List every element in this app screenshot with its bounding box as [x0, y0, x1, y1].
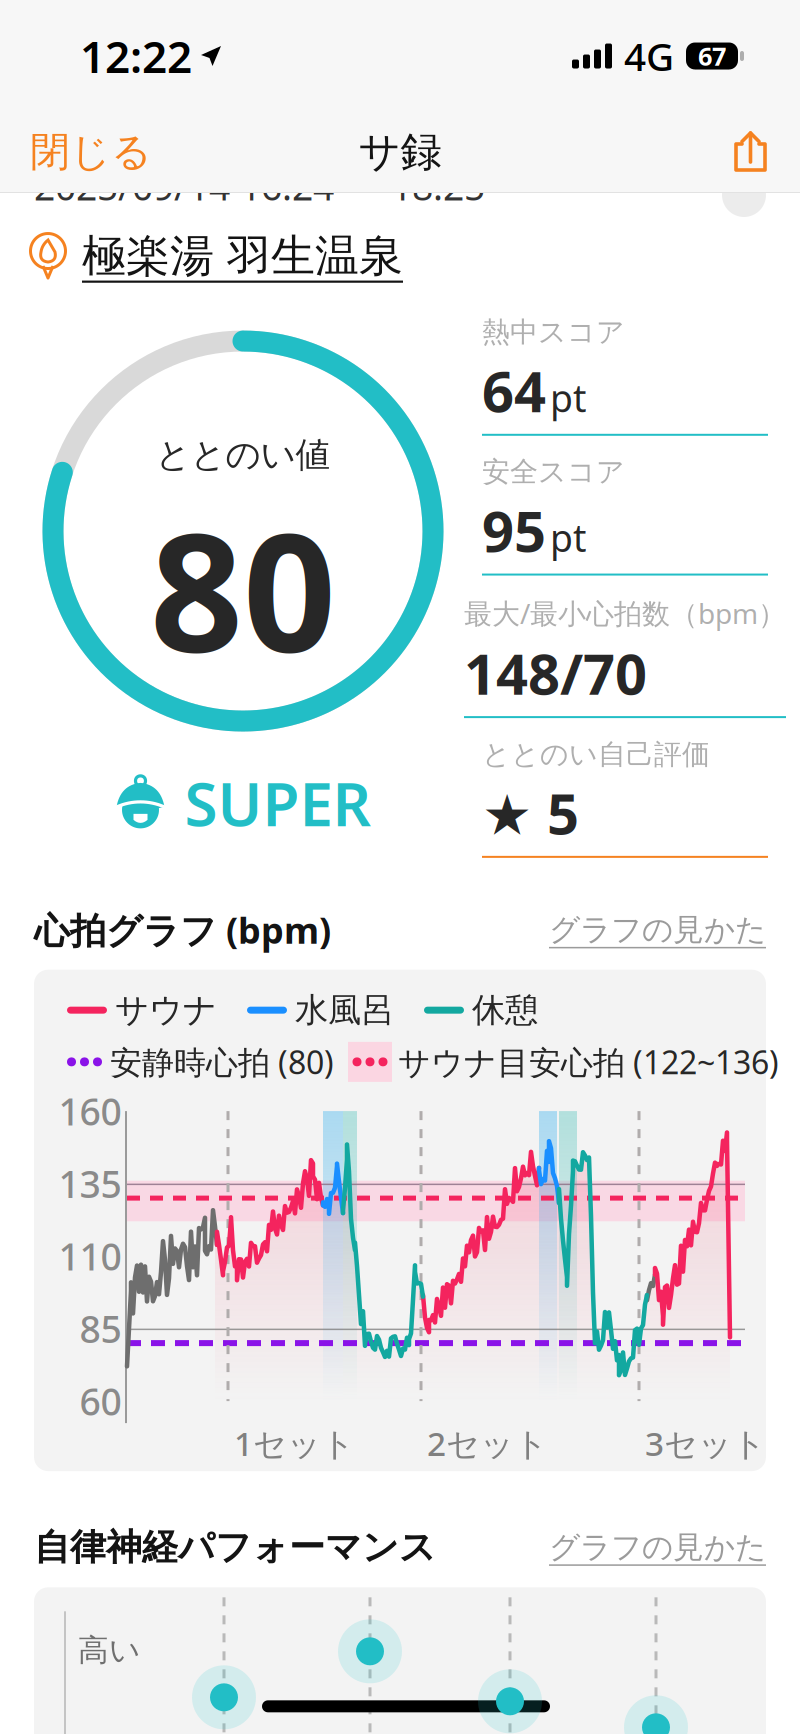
staticText: 閉じる — [30, 127, 152, 176]
staticText: 148/70 — [464, 636, 647, 710]
staticText: 60 — [79, 1376, 121, 1426]
staticText: ととのい値 — [155, 434, 330, 476]
staticText: 安静時心拍 (80) — [110, 1041, 334, 1083]
staticText: SUPER — [184, 763, 371, 843]
staticText: 135 — [58, 1159, 121, 1208]
staticText: グラフの見かた — [549, 911, 766, 949]
staticText: ★ 5 — [482, 775, 579, 850]
button[interactable]: 極楽湯 羽生温泉 — [82, 229, 403, 283]
staticText: 2025/09/14 16:24 〜 18:25 — [34, 161, 485, 211]
staticText: pt — [550, 513, 586, 562]
staticText: 3セット — [645, 1421, 766, 1465]
staticText: 64 — [482, 353, 546, 428]
button[interactable]: 共有 — [732, 129, 770, 175]
staticText: ととのい自己評価 — [482, 737, 710, 771]
staticText: 熱中スコア — [482, 315, 625, 349]
button[interactable]: 閉じる — [30, 127, 152, 176]
staticText: サ録 — [358, 127, 441, 177]
staticText: 160 — [58, 1086, 121, 1136]
staticText: 80 — [150, 480, 336, 696]
button[interactable]: グラフの見かた — [549, 911, 766, 949]
staticText: 2セット — [427, 1421, 548, 1465]
staticText: サウナ — [115, 990, 217, 1031]
staticText: 110 — [58, 1231, 121, 1281]
staticText: 1セット — [234, 1421, 355, 1465]
button[interactable]: グラフの見かた — [549, 1528, 766, 1566]
staticText: 高い — [78, 1631, 140, 1669]
staticText: 休憩 — [472, 990, 538, 1031]
staticText: 水風呂 — [295, 990, 394, 1031]
staticText: 95 — [482, 493, 546, 568]
staticText: グラフの見かた — [549, 1528, 766, 1566]
staticText: サウナ目安心拍 (122~136) — [398, 1041, 779, 1083]
staticText: 極楽湯 羽生温泉 — [82, 229, 403, 283]
staticText: 12:22 — [80, 27, 192, 85]
staticText: 4G — [624, 30, 674, 82]
staticText: pt — [550, 373, 586, 423]
staticText: 85 — [79, 1304, 121, 1353]
staticText: 最大/最小心拍数（bpm） — [464, 595, 786, 632]
staticText: 安全スコア — [482, 455, 625, 489]
staticText: 67 — [698, 39, 726, 73]
staticText: 心拍グラフ (bpm) — [34, 906, 331, 954]
staticText: 自律神経パフォーマンス — [34, 1525, 436, 1569]
